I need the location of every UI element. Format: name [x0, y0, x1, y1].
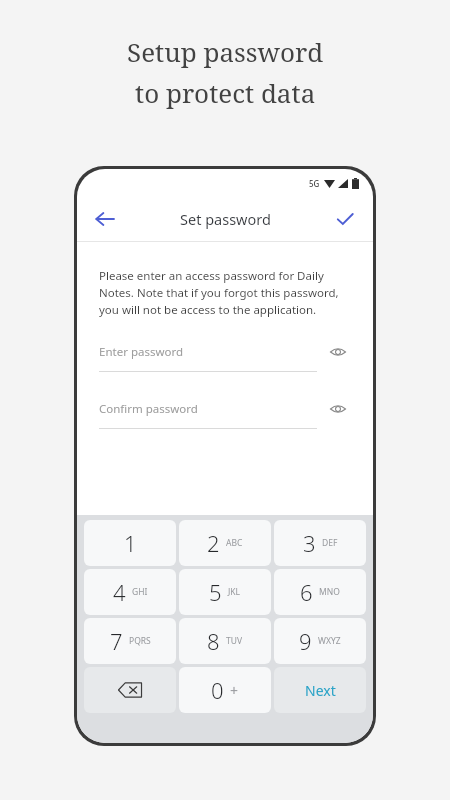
staticText: Setup password — [127, 34, 324, 69]
button[interactable]: 1 — [84, 520, 176, 566]
button[interactable]: 0 — [179, 667, 271, 713]
staticText: 6 — [300, 577, 313, 607]
staticText: + — [230, 681, 239, 700]
button[interactable]: 3 — [274, 520, 366, 566]
staticText: Confirm password — [99, 401, 198, 417]
staticText: ABC — [226, 537, 243, 549]
button[interactable]: 5 — [179, 569, 271, 615]
staticText: WXYZ — [318, 635, 341, 647]
staticText: 0 — [211, 675, 224, 705]
staticText: PQRS — [129, 635, 151, 647]
staticText: 7 — [110, 626, 123, 656]
staticText: Enter password — [99, 344, 184, 360]
button[interactable]: 7 — [84, 618, 176, 664]
staticText: 5G — [309, 178, 320, 189]
staticText: 1 — [124, 528, 137, 558]
button[interactable]: 2 — [179, 520, 271, 566]
button[interactable]: Confirm — [325, 199, 365, 239]
button[interactable]: Confirm password — [99, 396, 351, 429]
staticText: 5 — [209, 577, 222, 607]
staticText: Set password — [180, 209, 271, 229]
staticText: Next — [305, 681, 336, 700]
staticText: MNO — [319, 586, 340, 598]
button[interactable]: 4 — [84, 569, 176, 615]
button[interactable]: Backspace — [84, 667, 176, 713]
staticText: to protect data — [135, 75, 316, 110]
button[interactable]: Enter password — [99, 339, 351, 372]
button[interactable]: Back — [85, 199, 125, 239]
button[interactable]: Show password — [325, 396, 351, 422]
staticText: DEF — [322, 537, 338, 549]
button[interactable]: 9 — [274, 618, 366, 664]
staticText: Please enter an access password for Dail… — [99, 268, 351, 317]
staticText: 9 — [299, 626, 312, 656]
staticText: TUV — [226, 635, 243, 647]
button[interactable]: 8 — [179, 618, 271, 664]
button[interactable]: 6 — [274, 569, 366, 615]
staticText: JKL — [228, 586, 241, 598]
staticText: 8 — [207, 626, 220, 656]
staticText: 3 — [303, 528, 316, 558]
button[interactable]: Next — [274, 667, 366, 713]
staticText: 2 — [207, 528, 220, 558]
staticText: GHI — [132, 586, 148, 598]
staticText: 4 — [113, 577, 126, 607]
button[interactable]: Show password — [325, 339, 351, 365]
